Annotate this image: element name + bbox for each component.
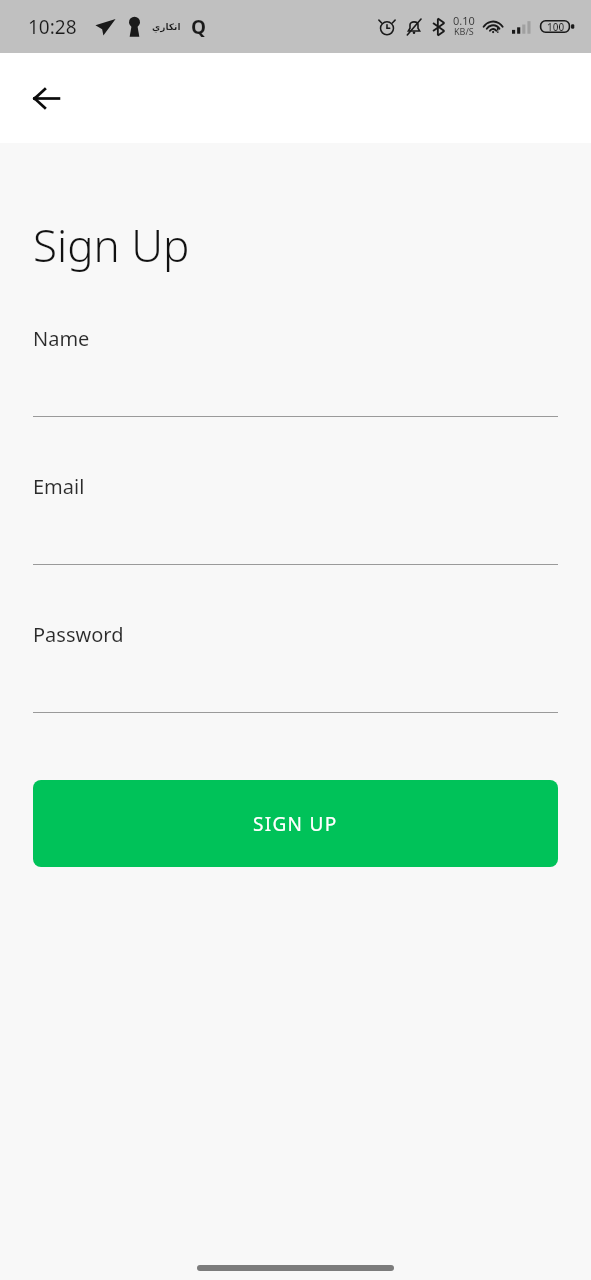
staticText: انكاري (152, 22, 181, 32)
button[interactable]: Back (22, 74, 70, 122)
button[interactable]: Name (0, 325, 591, 473)
staticText: 0.10 (453, 13, 475, 28)
staticText: 100 (547, 20, 565, 34)
staticText: Password (33, 621, 124, 648)
staticText: 10:28 (28, 14, 77, 40)
staticText: Name (33, 325, 90, 352)
button[interactable]: SIGN UP (33, 780, 558, 867)
staticText: Q (191, 14, 207, 40)
button[interactable]: Password (0, 621, 591, 769)
staticText: Sign Up (33, 215, 190, 275)
staticText: SIGN UP (253, 811, 338, 837)
button[interactable]: Email (0, 473, 591, 621)
staticText: KB/S (454, 25, 474, 37)
staticText: Email (33, 473, 85, 500)
